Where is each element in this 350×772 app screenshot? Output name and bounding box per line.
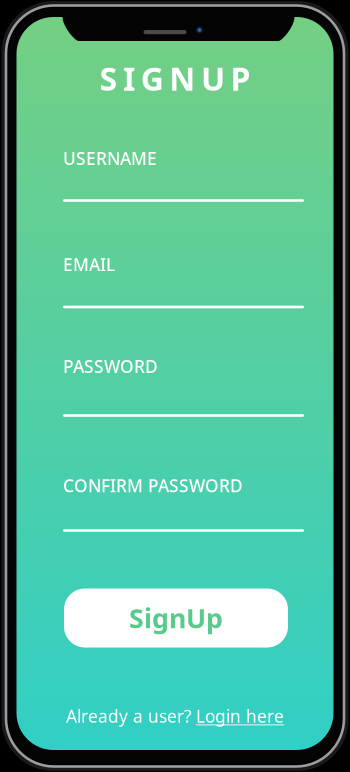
staticText: SignUp xyxy=(129,600,223,636)
staticText: CONFIRM PASSWORD xyxy=(63,474,243,497)
staticText: Login here xyxy=(196,704,284,727)
staticText: SIGNUP xyxy=(99,57,250,100)
staticText: USERNAME xyxy=(63,147,157,170)
staticText: EMAIL xyxy=(63,253,115,276)
button[interactable]: SignUp xyxy=(64,588,288,647)
staticText: PASSWORD xyxy=(63,355,158,378)
button[interactable]: Already a user? xyxy=(16,704,333,727)
staticText: Already a user? xyxy=(66,704,192,727)
